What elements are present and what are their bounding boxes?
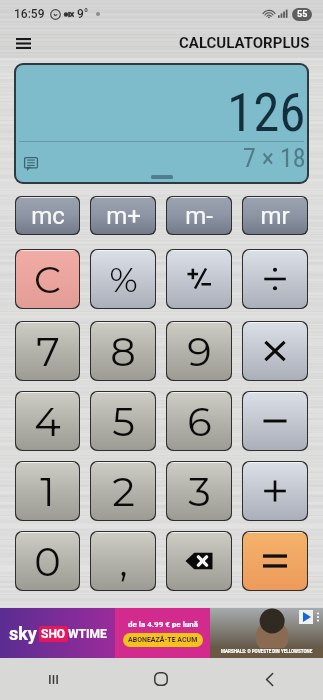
button[interactable]: Menu [8,28,38,58]
button[interactable]: Recents [0,658,107,700]
staticText: 8 [110,327,136,376]
staticText: 0 [34,537,61,586]
button[interactable]: 6 [167,392,231,450]
button[interactable]: Back [215,658,323,700]
staticText: 6 [187,397,212,446]
staticText: de la 4.99 € pe lună [128,620,199,629]
staticText: 9 [187,327,212,376]
staticText: mr [260,202,290,230]
staticText: WTIME [68,627,107,641]
button[interactable] [167,532,231,590]
button[interactable]: 4 [16,392,79,450]
staticText: 7 × 18 [243,143,306,173]
button[interactable]: 1 [16,462,79,520]
button[interactable]: , [91,532,155,590]
staticText: % [109,259,138,300]
button[interactable]: 5 [91,392,155,450]
staticText: mc [31,202,65,230]
staticText: 5 [112,397,135,446]
staticText: 9° [77,7,89,21]
staticText: 7 [36,327,60,376]
button[interactable]: 9 [167,322,231,380]
button[interactable]: History [21,154,41,174]
staticText: , [119,537,128,586]
button[interactable] [243,532,307,590]
staticText: SHO [41,627,66,641]
button[interactable]: m- [167,197,231,234]
button[interactable] [243,322,307,380]
button[interactable]: % [91,250,155,308]
button[interactable] [243,250,307,308]
button[interactable] [167,250,231,308]
staticText: 55 [297,9,308,20]
staticText: CALCULATORPLUS [179,34,310,52]
staticText: 126 [227,82,306,144]
button[interactable]: 0 [16,532,79,590]
button[interactable]: 8 [91,322,155,380]
button[interactable]: Home [107,658,215,700]
button[interactable]: 3 [167,462,231,520]
staticText: sky [9,623,37,644]
staticText: 16:59 [14,7,45,21]
button[interactable]: 2 [91,462,155,520]
staticText: 1 [40,467,55,516]
button[interactable]: mc [16,197,79,234]
button[interactable] [243,392,307,450]
button[interactable]: m+ [91,197,155,234]
button[interactable]: 7 [16,322,79,380]
staticText: 2 [112,467,135,516]
staticText: m+ [106,202,141,230]
staticText: m- [185,202,213,230]
button[interactable] [243,462,307,520]
staticText: ABONEAZĂ-TE ACUM [128,636,198,644]
staticText: MARSHALS: O POVESTE DIN YELLOWSTONE [221,649,313,654]
button[interactable]: mr [243,197,307,234]
staticText: 3 [188,467,211,516]
staticText: C [34,256,61,302]
button[interactable]: C [16,250,79,308]
staticText: 4 [34,397,61,446]
